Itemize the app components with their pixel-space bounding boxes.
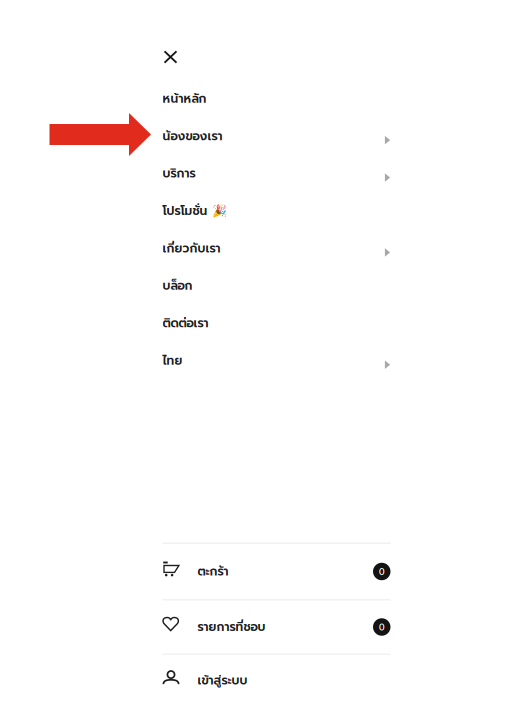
button[interactable]: โปรโมชั่น 🎉	[162, 192, 390, 230]
button[interactable]: ไทย	[162, 342, 390, 379]
staticText: บริการ	[162, 164, 195, 183]
staticText: 0	[379, 566, 385, 577]
staticText: 0	[379, 621, 385, 633]
staticText: ติดต่อเรา	[162, 314, 208, 332]
button[interactable]: ติดต่อเรา	[162, 305, 390, 342]
button[interactable]: น้องของเรา	[162, 117, 390, 155]
staticText: รายการที่ชอบ	[197, 618, 265, 636]
staticText: น้องของเรา	[162, 127, 222, 145]
staticText: ไทย	[162, 352, 182, 370]
button[interactable]: เข้าสู่ระบบ	[162, 655, 390, 706]
staticText: โปรโมชั่น 🎉	[162, 202, 226, 220]
button[interactable]: Close menu	[162, 45, 186, 69]
staticText: เข้าสู่ระบบ	[197, 671, 247, 689]
staticText: บล็อก	[162, 277, 192, 295]
button[interactable]: บริการ	[162, 155, 390, 192]
button[interactable]: บล็อก	[162, 267, 390, 305]
button[interactable]: ตะกร้า	[162, 544, 390, 599]
staticText: เกี่ยวกับเรา	[162, 239, 220, 257]
button[interactable]: รายการที่ชอบ	[162, 600, 390, 653]
button[interactable]: เกี่ยวกับเรา	[162, 230, 390, 267]
button[interactable]: หน้าหลัก	[162, 80, 390, 117]
staticText: ตะกร้า	[197, 562, 228, 580]
staticText: หน้าหลัก	[162, 90, 206, 108]
